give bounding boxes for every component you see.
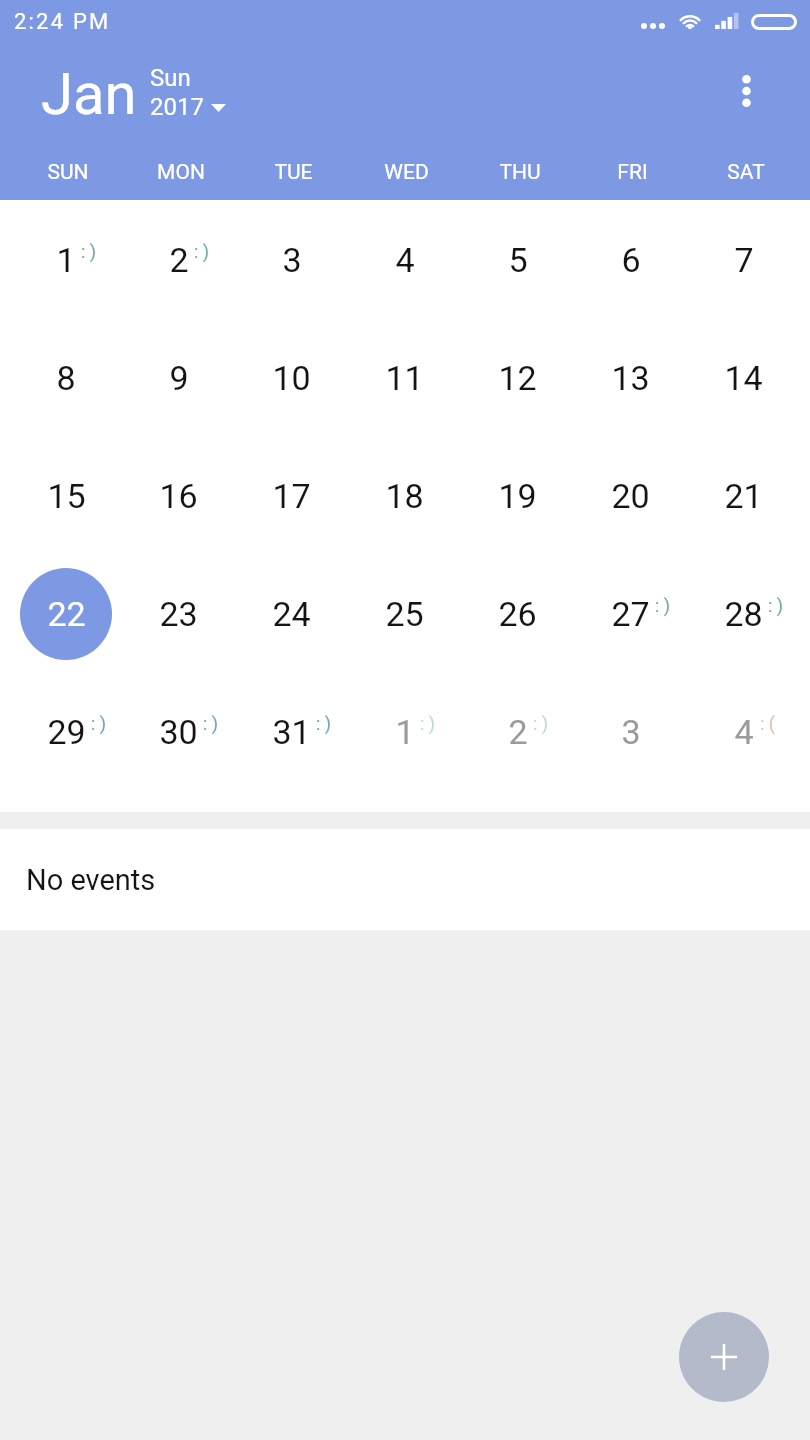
button[interactable]: 14 — [687, 319, 800, 437]
staticText: : ) — [533, 713, 549, 734]
button[interactable]: 23 — [122, 555, 235, 673]
button[interactable]: 13 — [574, 319, 687, 437]
staticText: 1 — [56, 240, 76, 280]
staticText: FRI — [617, 160, 648, 185]
staticText: 1 — [395, 712, 415, 752]
button[interactable]: 5 — [461, 201, 574, 319]
staticText: 4 — [734, 712, 754, 752]
button[interactable]: 4 — [348, 201, 461, 319]
staticText: 10 — [272, 358, 311, 398]
button[interactable]: 2 — [461, 673, 574, 791]
staticText: 23 — [159, 594, 198, 634]
button[interactable]: 1 — [348, 673, 461, 791]
staticText: 7 — [734, 240, 754, 280]
button[interactable]: 11 — [348, 319, 461, 437]
staticText: 2 — [169, 240, 189, 280]
staticText: 14 — [724, 358, 763, 398]
button[interactable]: 28 — [687, 555, 800, 673]
button[interactable]: 10 — [235, 319, 348, 437]
staticText: : ( — [760, 713, 775, 734]
staticText: 25 — [385, 594, 424, 634]
staticText: 24 — [272, 594, 311, 634]
staticText: 18 — [385, 476, 424, 516]
staticText: : ) — [420, 713, 436, 734]
staticText: 13 — [611, 358, 650, 398]
staticText: : ) — [194, 241, 210, 262]
staticText: 31 — [272, 712, 311, 752]
staticText: 9 — [169, 358, 189, 398]
button[interactable]: 24 — [235, 555, 348, 673]
staticText: Jan — [41, 60, 137, 128]
button[interactable]: 20 — [574, 437, 687, 555]
button[interactable]: 29 — [10, 673, 122, 791]
staticText: 3 — [282, 240, 302, 280]
staticText: 5 — [508, 240, 528, 280]
staticText: THU — [499, 160, 541, 185]
staticText: 30 — [159, 712, 198, 752]
staticText: 19 — [498, 476, 537, 516]
staticText: 26 — [498, 594, 537, 634]
staticText: : ) — [655, 595, 671, 616]
staticText: 27 — [611, 594, 650, 634]
staticText: SUN — [47, 160, 89, 185]
staticText: 11 — [385, 358, 424, 398]
staticText: 28 — [724, 594, 763, 634]
button[interactable]: More options — [714, 62, 778, 126]
staticText: : ) — [203, 713, 219, 734]
staticText: 21 — [724, 476, 763, 516]
button[interactable]: 3 — [235, 201, 348, 319]
button[interactable]: 12 — [461, 319, 574, 437]
staticText: No events — [26, 863, 156, 897]
staticText: MON — [157, 160, 205, 185]
button[interactable]: Add event — [679, 1312, 769, 1402]
staticText: 8 — [56, 358, 76, 398]
staticText: 17 — [272, 476, 311, 516]
button[interactable]: 2 — [122, 201, 235, 319]
button[interactable]: 25 — [348, 555, 461, 673]
staticText: 16 — [159, 476, 198, 516]
staticText: 12 — [498, 358, 537, 398]
button[interactable]: 27 — [574, 555, 687, 673]
staticText: 2 — [508, 712, 528, 752]
staticText: Sun — [150, 64, 191, 92]
button[interactable]: 4 — [687, 673, 800, 791]
staticText: TUE — [274, 160, 313, 185]
button[interactable]: No events — [0, 829, 810, 930]
button[interactable]: 22 — [10, 555, 122, 673]
button[interactable]: 30 — [122, 673, 235, 791]
button[interactable]: 31 — [235, 673, 348, 791]
button[interactable]: 6 — [574, 201, 687, 319]
staticText: 2017 — [150, 93, 204, 121]
staticText: 15 — [47, 476, 86, 516]
staticText: : ) — [316, 713, 332, 734]
staticText: 20 — [611, 476, 650, 516]
button[interactable]: 17 — [235, 437, 348, 555]
staticText: 2:24 PM — [14, 9, 111, 35]
staticText: 6 — [621, 240, 641, 280]
button[interactable]: Jan — [41, 60, 226, 128]
staticText: 22 — [47, 594, 86, 634]
button[interactable]: 15 — [10, 437, 122, 555]
staticText: 29 — [47, 712, 86, 752]
button[interactable]: 26 — [461, 555, 574, 673]
button[interactable]: 9 — [122, 319, 235, 437]
staticText: 4 — [395, 240, 415, 280]
staticText: SAT — [727, 160, 765, 185]
staticText: : ) — [91, 713, 107, 734]
button[interactable]: 18 — [348, 437, 461, 555]
staticText: 3 — [621, 712, 641, 752]
button[interactable]: 3 — [574, 673, 687, 791]
button[interactable]: 16 — [122, 437, 235, 555]
button[interactable]: 21 — [687, 437, 800, 555]
button[interactable]: 8 — [10, 319, 122, 437]
staticText: : ) — [768, 595, 784, 616]
button[interactable]: 19 — [461, 437, 574, 555]
staticText: WED — [384, 160, 429, 185]
button[interactable]: 1 — [10, 201, 122, 319]
staticText: : ) — [81, 241, 97, 262]
button[interactable]: 7 — [687, 201, 800, 319]
